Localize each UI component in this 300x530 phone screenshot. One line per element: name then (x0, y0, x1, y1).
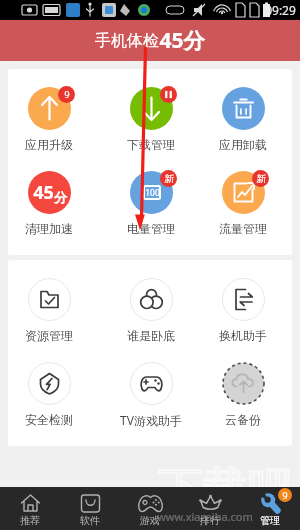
staticText: 电量管理 (127, 221, 175, 236)
staticText: 9 (282, 489, 288, 502)
staticText: 应用升级 (25, 137, 73, 152)
staticText: 清理加速 (25, 221, 73, 236)
button[interactable]: 推荐 (0, 487, 60, 530)
staticText: 排行 (200, 514, 220, 527)
staticText: 下载管理 (127, 137, 175, 152)
staticText: 软件 (80, 514, 100, 527)
staticText: 应用卸载 (219, 137, 267, 152)
staticText: 45 (33, 180, 54, 205)
staticText: 流量管理 (219, 221, 267, 236)
button[interactable]: 9 (240, 487, 300, 530)
staticText: 分 (54, 189, 67, 205)
staticText: 换机助手 (219, 328, 267, 343)
button[interactable]: 排行 (180, 487, 240, 530)
staticText: 45分 (159, 26, 205, 55)
staticText: www.xiazaiba.com (157, 509, 253, 524)
button[interactable]: 换机助手 (197, 278, 289, 343)
staticText: 谁是卧底 (127, 328, 175, 343)
button[interactable]: 9 (8, 87, 95, 152)
staticText: 100 (145, 187, 160, 199)
button[interactable]: 软件 (60, 487, 120, 530)
staticText: 资源管理 (25, 328, 73, 343)
button[interactable]: 下载管理 (105, 87, 197, 152)
staticText: 下载吧 (158, 461, 293, 518)
staticText: 新 (164, 173, 174, 185)
staticText: 管理 (260, 514, 280, 527)
staticText: 云备份 (225, 412, 261, 427)
staticText: 手机体检 (95, 31, 159, 51)
button[interactable]: 游戏 (120, 487, 180, 530)
button[interactable]: 应用卸载 (197, 87, 289, 152)
button[interactable]: 100 (105, 171, 197, 236)
staticText: TV游戏助手 (120, 412, 182, 428)
button[interactable]: TV游戏助手 (105, 362, 197, 428)
staticText: 09:29 (265, 2, 296, 18)
button[interactable]: 新 (197, 171, 289, 236)
button[interactable]: 安全检测 (8, 362, 95, 427)
button[interactable]: 45 (8, 171, 95, 236)
button[interactable]: 云备份 (197, 362, 289, 427)
staticText: 安全检测 (25, 412, 73, 427)
button[interactable]: 谁是卧底 (105, 278, 197, 343)
button[interactable]: 资源管理 (8, 278, 95, 343)
staticText: 9 (64, 88, 70, 101)
staticText: 推荐 (20, 514, 40, 527)
staticText: 新 (256, 173, 266, 185)
staticText: 游戏 (140, 514, 160, 527)
